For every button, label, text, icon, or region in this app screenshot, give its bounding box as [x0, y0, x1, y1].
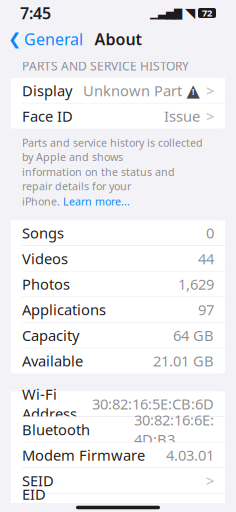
button[interactable]: Wi-Fi Address [11, 391, 225, 416]
staticText: 7:45 [20, 2, 51, 24]
staticText: 0 [206, 223, 214, 243]
staticText: Songs [22, 223, 64, 243]
staticText: Wi-Fi Address [22, 384, 77, 423]
staticText: 72 [202, 7, 212, 19]
staticText: Display [22, 81, 72, 100]
staticText: PARTS AND SERVICE HISTORY [22, 58, 189, 74]
staticText: ! [192, 87, 194, 97]
staticText: 89049032005008882600123110456145 [22, 505, 206, 512]
button[interactable]: Capacity [11, 323, 225, 348]
staticText: About [94, 28, 141, 50]
button[interactable]: Learn more... [63, 194, 130, 208]
staticText: Videos [22, 249, 68, 268]
button[interactable]: Available [11, 348, 225, 373]
button[interactable]: EID [11, 494, 225, 512]
staticText: 30:82:16:5E:CB:6D [92, 394, 214, 414]
button[interactable]: Modem Firmware [11, 443, 225, 468]
staticText: ▲ [186, 81, 199, 100]
button[interactable]: Photos [11, 272, 225, 297]
staticText: Unknown Part [83, 81, 182, 100]
staticText: 1,629 [178, 274, 214, 294]
staticText: SEID [22, 471, 54, 490]
button[interactable]: ❮ [0, 26, 91, 52]
staticText: 4.03.01 [166, 445, 214, 465]
staticText: ◥ [185, 5, 195, 20]
staticText: 21.01 GB [153, 351, 214, 371]
staticText: information on the status and repair det… [22, 165, 175, 193]
staticText: Bluetooth [22, 420, 90, 439]
staticText: General [24, 28, 83, 50]
button[interactable]: Display [11, 78, 225, 103]
staticText: iPhone. [22, 194, 63, 208]
staticText: Modem Firmware [22, 445, 145, 465]
staticText: Capacity [22, 325, 79, 345]
staticText: Available [22, 351, 83, 371]
staticText: > [206, 471, 214, 490]
staticText: EID [22, 484, 46, 504]
staticText: Applications [22, 300, 106, 319]
button[interactable]: Bluetooth [11, 417, 225, 442]
button[interactable]: Songs [11, 220, 225, 245]
button[interactable]: Face ID [11, 103, 225, 128]
button[interactable]: SEID [11, 468, 225, 493]
staticText: Parts and service history is collected b… [22, 135, 203, 164]
staticText: 64 GB [173, 325, 214, 345]
staticText: > [206, 81, 214, 100]
button[interactable]: Applications [11, 297, 225, 322]
staticText: 30:82:16:6E:4D:B3 [134, 410, 214, 449]
staticText: Issue [164, 106, 200, 126]
staticText: ❮ [8, 30, 21, 48]
staticText: 97 [198, 300, 214, 319]
staticText: Learn more... [63, 194, 130, 208]
staticText: ▁▃▅▇ [150, 7, 182, 19]
staticText: Photos [22, 274, 70, 294]
staticText: > [206, 106, 214, 126]
staticText: 44 [198, 249, 214, 268]
button[interactable]: Videos [11, 246, 225, 271]
staticText: Face ID [22, 106, 73, 126]
